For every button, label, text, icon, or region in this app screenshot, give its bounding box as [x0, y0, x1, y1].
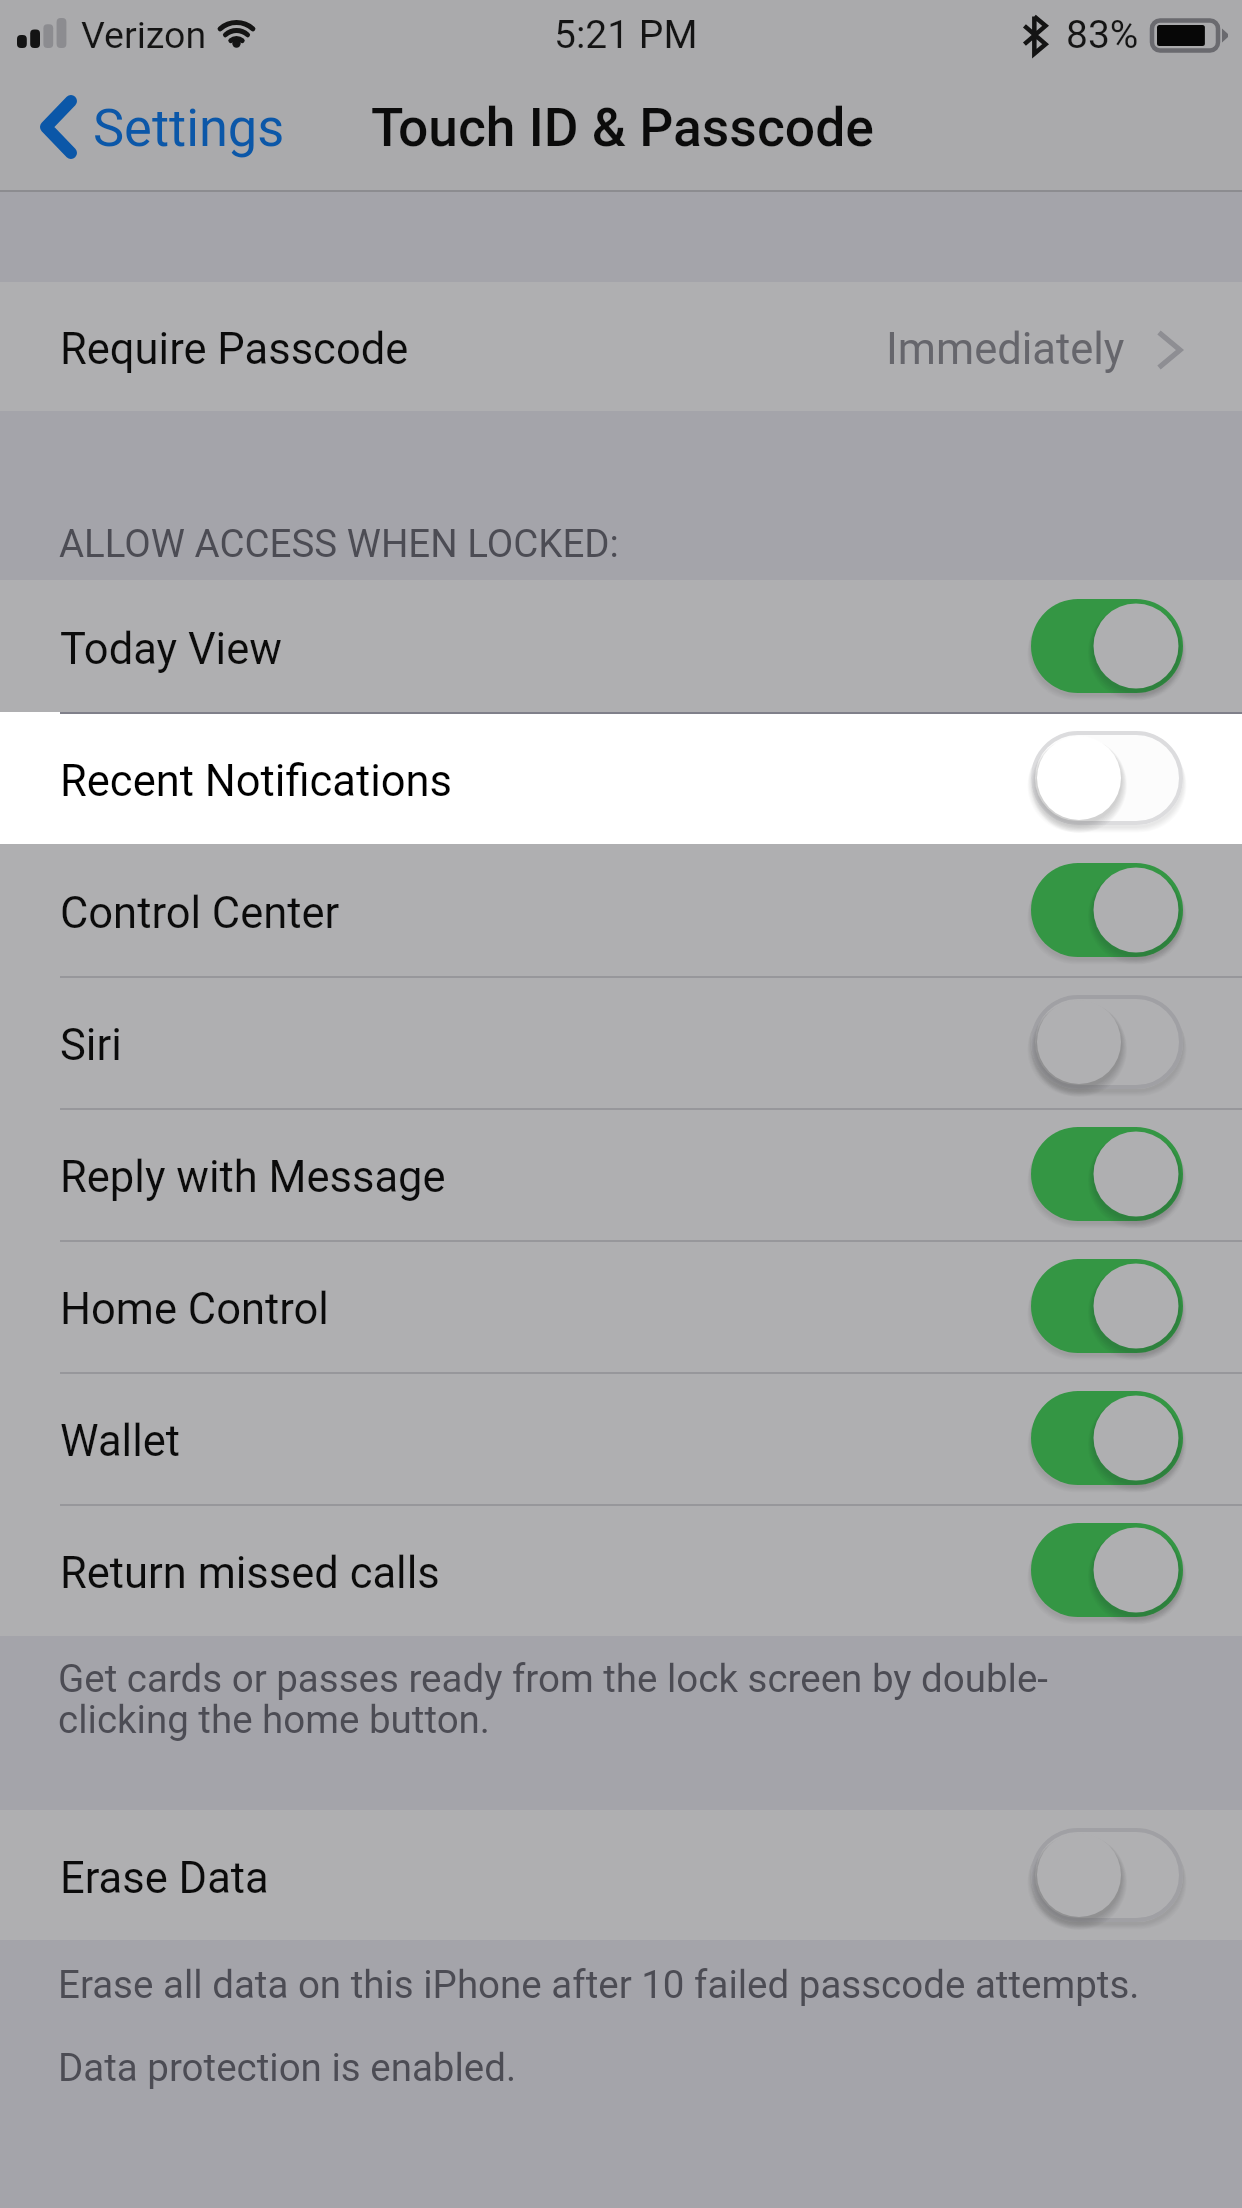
- button[interactable]: Home Control on: [1031, 1259, 1183, 1353]
- button[interactable]: Wallet: [0, 1372, 1242, 1504]
- button[interactable]: Siri: [0, 976, 1242, 1108]
- staticText: Return missed calls: [60, 1548, 440, 1599]
- staticText: Home Control: [60, 1284, 329, 1335]
- other: Back to Settings: [39, 95, 77, 159]
- staticText: 83%: [1066, 12, 1139, 58]
- staticText: Verizon: [81, 13, 207, 57]
- staticText: Settings: [93, 97, 285, 158]
- staticText: Wallet: [60, 1416, 181, 1467]
- button[interactable]: Home Control: [0, 1240, 1242, 1372]
- staticText: Get cards or passes ready from the lock …: [58, 1656, 1049, 1742]
- button[interactable]: Erase Data: [0, 1810, 1242, 1940]
- staticText: Erase Data: [60, 1853, 269, 1904]
- button[interactable]: Recent Notifications off: [1031, 731, 1183, 825]
- staticText: Reply with Message: [60, 1152, 446, 1203]
- button[interactable]: Reply with Message on: [1031, 1127, 1183, 1221]
- staticText: Erase all data on this iPhone after 10 f…: [58, 1962, 1140, 2007]
- button[interactable]: Control Center: [0, 844, 1242, 976]
- button[interactable]: Return missed calls: [0, 1504, 1242, 1636]
- button[interactable]: Control Center on: [1031, 863, 1183, 957]
- staticText: Immediately: [886, 324, 1125, 375]
- button[interactable]: Erase Data off: [1031, 1828, 1183, 1922]
- button[interactable]: Today View: [0, 580, 1242, 712]
- button[interactable]: Siri off: [1031, 995, 1183, 1089]
- button[interactable]: Require Passcode: [0, 282, 1242, 411]
- staticText: Touch ID & Passcode: [371, 97, 874, 159]
- staticText: ALLOW ACCESS WHEN LOCKED:: [59, 521, 619, 566]
- staticText: Require Passcode: [60, 324, 409, 375]
- button[interactable]: Recent Notifications: [0, 712, 1242, 844]
- button[interactable]: Wallet on: [1031, 1391, 1183, 1485]
- staticText: Recent Notifications: [60, 756, 453, 807]
- button[interactable]: Today View on: [1031, 599, 1183, 693]
- staticText: Control Center: [60, 888, 340, 939]
- staticText: Siri: [60, 1020, 122, 1071]
- staticText: Today View: [60, 624, 282, 675]
- staticText: Data protection is enabled.: [58, 2045, 517, 2090]
- button[interactable]: Reply with Message: [0, 1108, 1242, 1240]
- button[interactable]: Return missed calls on: [1031, 1523, 1183, 1617]
- button[interactable]: Back to Settings: [0, 79, 309, 175]
- staticText: 5:21 PM: [554, 12, 698, 58]
